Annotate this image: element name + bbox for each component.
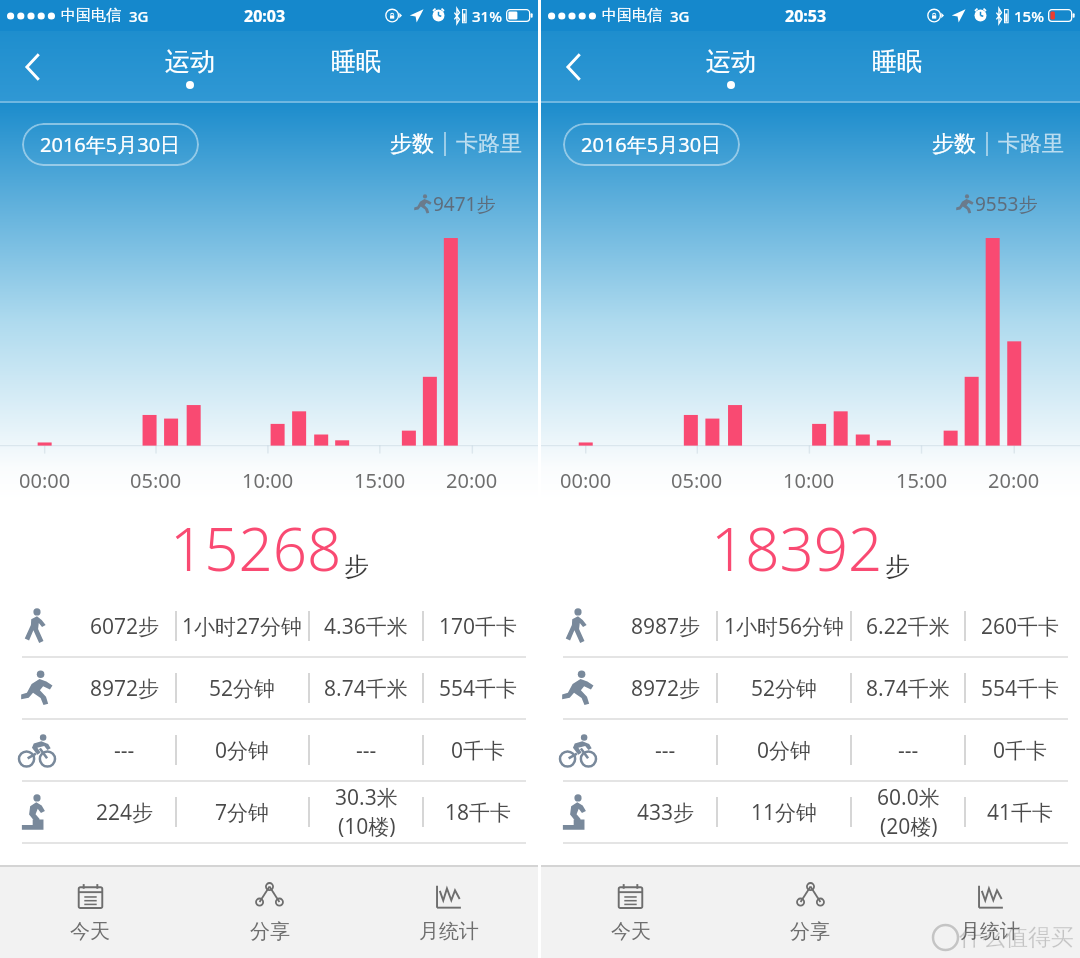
button[interactable]: 433步 xyxy=(541,782,1080,842)
staticText: 170千卡 xyxy=(439,612,518,641)
staticText: 分享 xyxy=(250,919,290,944)
staticText: 15% xyxy=(1014,6,1044,26)
button[interactable]: 224步 xyxy=(0,782,538,842)
staticText: 步 xyxy=(344,551,369,582)
button[interactable]: 步数 xyxy=(932,130,976,158)
staticText: 11分钟 xyxy=(751,798,818,827)
staticText: 运动 xyxy=(165,46,215,77)
button[interactable]: 2016年5月30日 xyxy=(581,131,722,158)
staticText: 0分钟 xyxy=(215,736,270,765)
staticText: 4.36千米 xyxy=(324,612,408,641)
button[interactable]: 返回 xyxy=(549,42,599,92)
staticText: 10:00 xyxy=(783,467,835,494)
staticText: 52分钟 xyxy=(209,674,276,703)
staticText: 30.3米 xyxy=(335,783,398,812)
staticText: 卡路里 xyxy=(998,130,1064,158)
staticText: 今天 xyxy=(611,919,651,944)
staticText: 3G xyxy=(670,6,690,26)
button[interactable]: 卡路里 xyxy=(456,130,522,158)
staticText: --- xyxy=(356,736,377,765)
staticText: 8972步 xyxy=(90,674,160,703)
staticText: (20楼) xyxy=(880,812,938,841)
staticText: 05:00 xyxy=(130,467,182,494)
staticText: 中国电信 xyxy=(61,6,121,25)
staticText: --- xyxy=(898,736,919,765)
staticText: 554千卡 xyxy=(981,674,1060,703)
button[interactable]: 8987步 xyxy=(541,596,1080,656)
button[interactable]: 步数 xyxy=(390,130,434,158)
button[interactable]: 8972步 xyxy=(541,658,1080,718)
staticText: 18千卡 xyxy=(445,798,512,827)
button[interactable]: 分享 xyxy=(180,867,359,958)
staticText: 8987步 xyxy=(631,612,701,641)
button[interactable]: 运动 xyxy=(671,31,791,103)
staticText: 7分钟 xyxy=(215,798,270,827)
staticText: 月统计 xyxy=(960,919,1020,944)
staticText: 05:00 xyxy=(671,467,723,494)
staticText: 20:03 xyxy=(244,5,286,27)
staticText: 554千卡 xyxy=(439,674,518,703)
staticText: 18392 xyxy=(711,507,883,589)
staticText: 15268 xyxy=(170,507,342,589)
staticText: 15:00 xyxy=(354,467,406,494)
staticText: 31% xyxy=(472,6,502,26)
staticText: 睡眠 xyxy=(331,46,381,77)
staticText: 41千卡 xyxy=(987,798,1054,827)
staticText: 15:00 xyxy=(896,467,948,494)
staticText: 什么值得买 xyxy=(959,923,1074,952)
staticText: 卡路里 xyxy=(456,130,522,158)
button[interactable]: 分享 xyxy=(720,867,900,958)
button[interactable]: 睡眠 xyxy=(837,31,957,103)
staticText: 3G xyxy=(129,6,149,26)
staticText: 月统计 xyxy=(419,919,479,944)
staticText: 中国电信 xyxy=(602,6,662,25)
staticText: 分享 xyxy=(790,919,830,944)
button[interactable]: 返回 xyxy=(8,42,58,92)
staticText: 8972步 xyxy=(631,674,701,703)
staticText: 20:00 xyxy=(988,467,1040,494)
staticText: 步 xyxy=(885,551,910,582)
staticText: 20:00 xyxy=(446,467,498,494)
staticText: 睡眠 xyxy=(872,46,922,77)
staticText: 6.22千米 xyxy=(866,612,950,641)
staticText: 1小时27分钟 xyxy=(182,612,303,641)
button[interactable]: 6072步 xyxy=(0,596,538,656)
button[interactable]: 2016年5月30日 xyxy=(40,131,181,158)
staticText: 20:53 xyxy=(785,5,827,27)
staticText: 8.74千米 xyxy=(866,674,950,703)
button[interactable]: --- xyxy=(541,720,1080,780)
button[interactable]: 8972步 xyxy=(0,658,538,718)
staticText: 步数 xyxy=(932,130,976,158)
staticText: 00:00 xyxy=(560,467,612,494)
button[interactable]: --- xyxy=(0,720,538,780)
staticText: 0千卡 xyxy=(993,736,1048,765)
staticText: 9553步 xyxy=(975,191,1038,217)
button[interactable]: 月统计 xyxy=(359,867,538,958)
staticText: 步数 xyxy=(390,130,434,158)
staticText: 2016年5月30日 xyxy=(40,131,181,158)
staticText: (10楼) xyxy=(338,812,396,841)
staticText: 224步 xyxy=(96,798,154,827)
staticText: 6072步 xyxy=(90,612,160,641)
button[interactable]: 今天 xyxy=(541,867,720,958)
staticText: 运动 xyxy=(706,46,756,77)
button[interactable]: 月统计 xyxy=(900,867,1080,958)
button[interactable]: 今天 xyxy=(0,867,180,958)
staticText: 52分钟 xyxy=(751,674,818,703)
staticText: 0分钟 xyxy=(757,736,812,765)
staticText: 10:00 xyxy=(242,467,294,494)
staticText: 00:00 xyxy=(19,467,71,494)
staticText: 1小时56分钟 xyxy=(724,612,845,641)
staticText: 433步 xyxy=(637,798,695,827)
staticText: 8.74千米 xyxy=(324,674,408,703)
button[interactable]: 睡眠 xyxy=(296,31,416,103)
staticText: 2016年5月30日 xyxy=(581,131,722,158)
button[interactable]: 卡路里 xyxy=(998,130,1064,158)
staticText: 今天 xyxy=(70,919,110,944)
staticText: 60.0米 xyxy=(877,783,940,812)
button[interactable]: 运动 xyxy=(130,31,250,103)
staticText: 0千卡 xyxy=(451,736,506,765)
staticText: 260千卡 xyxy=(981,612,1060,641)
staticText: 9471步 xyxy=(433,191,496,217)
staticText: --- xyxy=(655,736,676,765)
